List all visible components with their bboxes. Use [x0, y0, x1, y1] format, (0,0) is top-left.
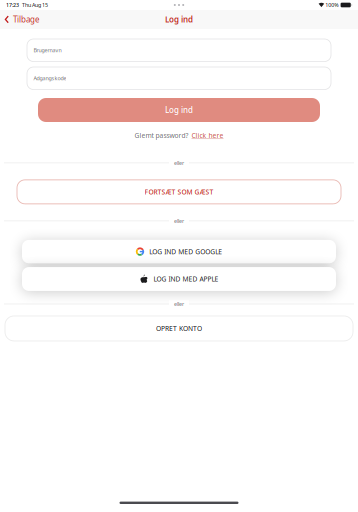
staticText: 17:23 [6, 1, 19, 9]
button[interactable]: LOG IND MED APPLE [22, 267, 336, 291]
staticText: eller [174, 159, 184, 166]
button[interactable]: FORTSÆT SOM GÆST [17, 180, 341, 204]
staticText: Glemt password? [134, 131, 188, 140]
staticText: 100% [324, 1, 338, 9]
staticText: LOG IND MED GOOGLE [149, 247, 222, 256]
staticText: eller [174, 300, 184, 307]
button[interactable]: Log ind [38, 98, 320, 122]
staticText: Click here [191, 131, 223, 140]
staticText: eller [174, 217, 184, 224]
staticText: Thu Aug 15 [19, 1, 48, 9]
button[interactable]: Click here [191, 131, 223, 140]
staticText: FORTSÆT SOM GÆST [144, 187, 213, 196]
staticText: Log ind [165, 14, 193, 25]
staticText: Log ind [165, 105, 193, 115]
staticText: Tilbage [13, 14, 40, 25]
staticText: Adgangskode [33, 75, 66, 82]
button[interactable]: OPRET KONTO [5, 316, 353, 341]
button[interactable]: LOG IND MED GOOGLE [22, 240, 336, 263]
staticText: Brugernavn [33, 47, 61, 54]
staticText: OPRET KONTO [156, 324, 202, 333]
button[interactable]: Tilbage [0, 10, 46, 29]
staticText: LOG IND MED APPLE [153, 275, 218, 283]
